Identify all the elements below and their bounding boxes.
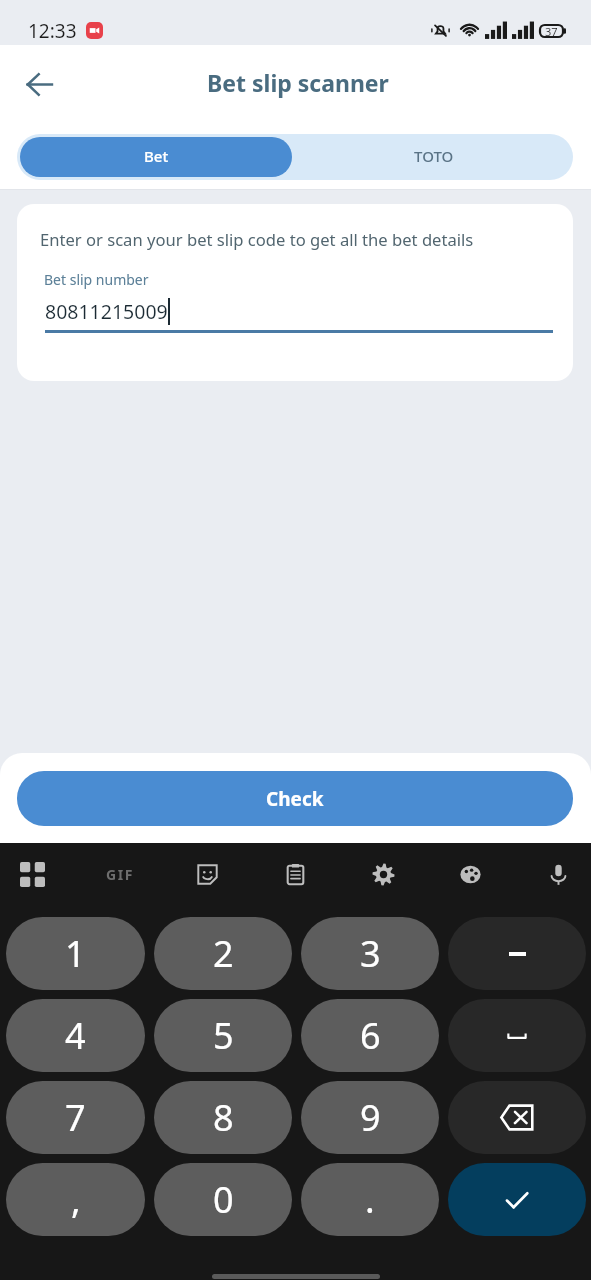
button[interactable]: Clipboard [263,843,327,905]
button[interactable]: 0 [154,1163,292,1236]
button[interactable]: , [6,1163,145,1236]
button[interactable]: 5 [154,999,292,1072]
button[interactable]: enter [448,1163,586,1236]
staticText: 7 [65,1093,86,1142]
staticText: 8 [213,1093,234,1142]
staticText: 5 [213,1011,234,1060]
button[interactable]: Apps [0,843,64,905]
button[interactable]: 1 [6,917,145,990]
button[interactable]: 4 [6,999,145,1072]
button[interactable]: Themes [438,843,502,905]
button[interactable]: 3 [301,917,439,990]
button[interactable]: 2 [154,917,292,990]
button[interactable]: 6 [301,999,439,1072]
button[interactable]: Settings [351,843,415,905]
button[interactable]: Voice input [526,843,590,905]
button[interactable]: del [448,1081,586,1154]
staticText: Check [266,786,324,812]
staticText: 37 [545,24,558,38]
staticText: 2 [213,929,234,978]
button[interactable]: GIF [88,843,152,905]
staticText: 12:33 [28,18,77,44]
button[interactable]: Bet [20,137,292,177]
staticText: , [71,1175,81,1224]
button[interactable]: space [448,999,586,1072]
staticText: GIF [106,865,135,884]
button[interactable]: 7 [6,1081,145,1154]
button[interactable]: . [301,1163,439,1236]
staticText: Bet slip number [44,270,149,289]
button[interactable]: 9 [301,1081,439,1154]
button[interactable]: Stickers [175,843,239,905]
staticText: 4 [65,1011,86,1060]
staticText: Bet [144,146,169,166]
button[interactable]: minus [448,917,586,990]
button[interactable]: TOTO [295,134,573,180]
button[interactable]: Check [17,771,573,826]
button[interactable]: 8 [154,1081,292,1154]
staticText: Bet slip scanner [207,67,389,98]
staticText: 1 [65,929,86,978]
staticText: 9 [360,1093,381,1142]
staticText: 80811215009 [45,298,168,325]
staticText: Enter or scan your bet slip code to get … [40,228,474,251]
staticText: 3 [360,929,381,978]
staticText: 0 [213,1175,234,1224]
button[interactable]: Back [15,60,63,108]
staticText: 6 [360,1011,381,1060]
staticText: TOTO [414,146,454,166]
staticText: . [365,1175,375,1224]
